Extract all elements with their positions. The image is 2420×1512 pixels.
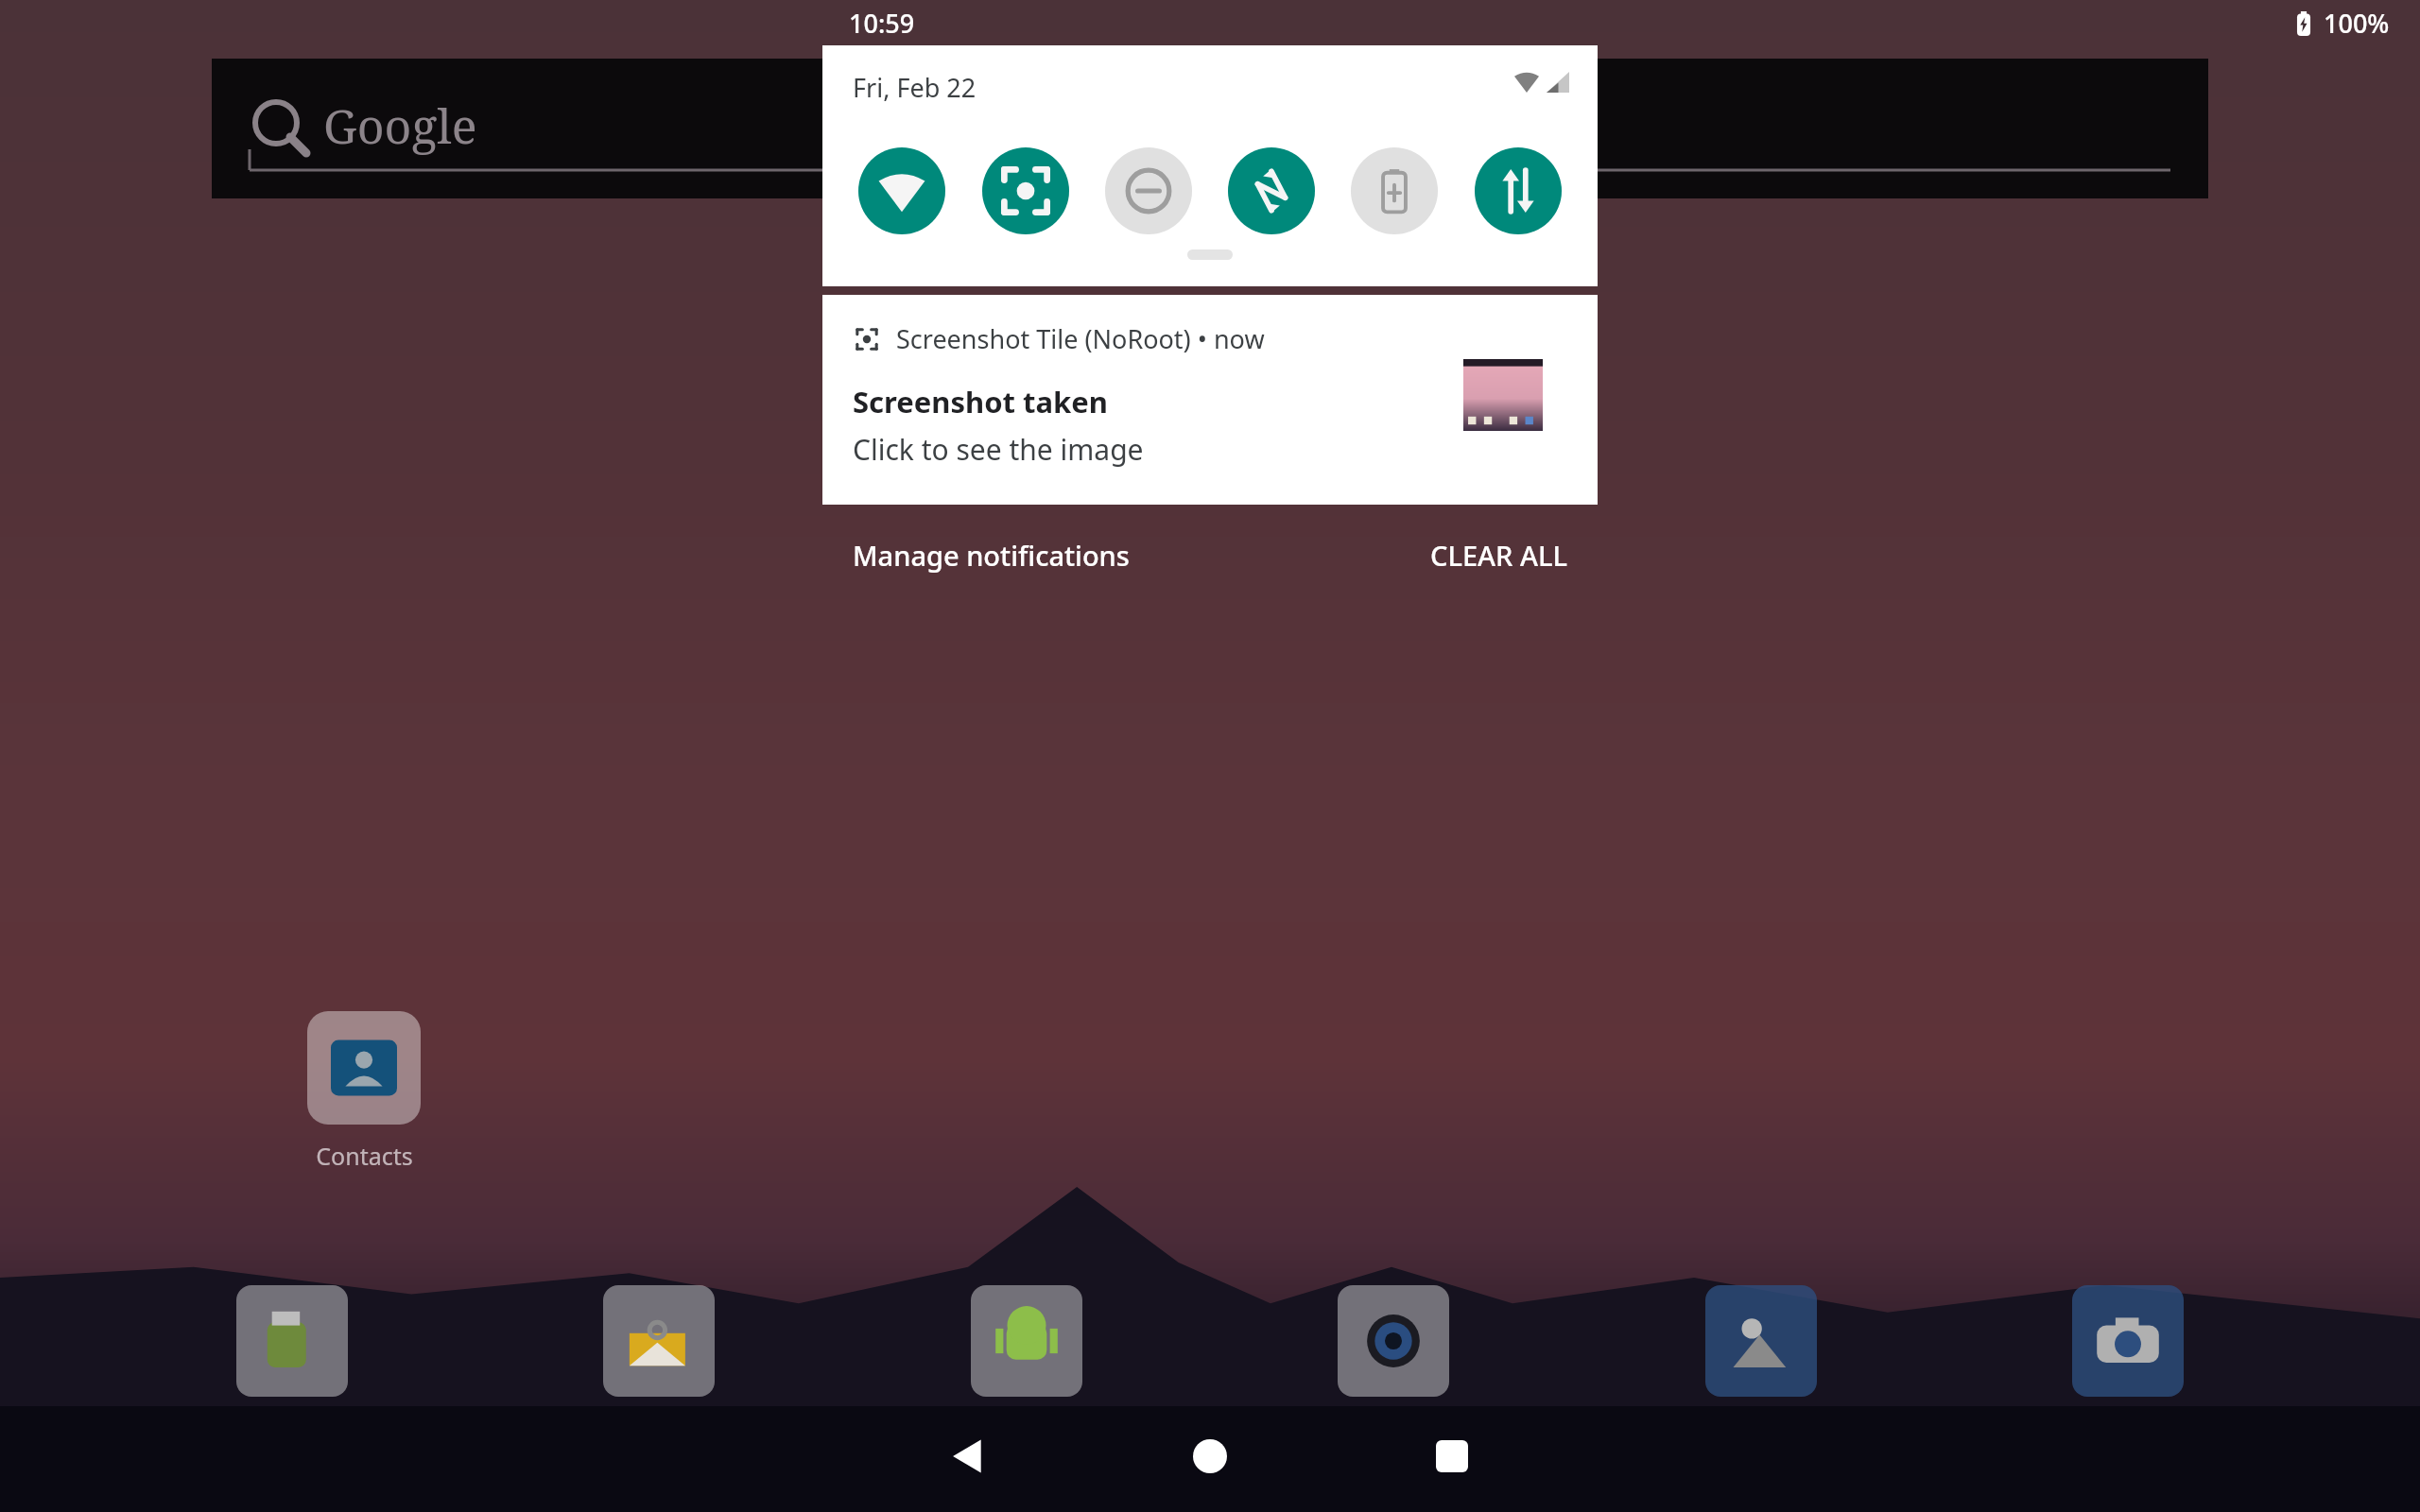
- button[interactable]: Wi-Fi: [858, 147, 945, 234]
- staticText: 10:59: [849, 6, 915, 41]
- button[interactable]: Back: [912, 1400, 1024, 1512]
- staticText: 100%: [2324, 6, 2390, 41]
- button[interactable]: Google: [212, 59, 2208, 198]
- button[interactable]: [307, 1011, 421, 1125]
- staticText: Fri, Feb 22: [853, 70, 977, 105]
- staticText: Contacts: [316, 1140, 413, 1172]
- button[interactable]: Screenshot: [982, 147, 1069, 234]
- button[interactable]: Manage notifications: [822, 529, 1137, 581]
- staticText: Click to see the image: [853, 430, 1144, 469]
- button[interactable]: Data: [1475, 147, 1562, 234]
- button[interactable]: Messaging: [236, 1285, 348, 1397]
- button[interactable]: Do not disturb: [1105, 147, 1192, 234]
- button[interactable]: Camera: [2072, 1285, 2184, 1397]
- button[interactable]: CLEAR ALL: [1423, 529, 1598, 581]
- button[interactable]: Recents: [1396, 1400, 1508, 1512]
- button[interactable]: Home: [1154, 1400, 1266, 1512]
- button[interactable]: Apps: [971, 1285, 1082, 1397]
- button[interactable]: Auto rotate: [1228, 147, 1315, 234]
- button[interactable]: Email: [603, 1285, 715, 1397]
- button[interactable]: Battery saver: [1351, 147, 1438, 234]
- staticText: CLEAR ALL: [1430, 537, 1567, 574]
- button[interactable]: Screenshot Tile (NoRoot) • now: [822, 295, 1598, 505]
- staticText: Screenshot Tile (NoRoot) • now: [896, 321, 1265, 356]
- button[interactable]: Photos: [1705, 1285, 1817, 1397]
- staticText: Manage notifications: [853, 537, 1130, 574]
- staticText: Screenshot taken: [853, 382, 1108, 421]
- button[interactable]: Camera lens: [1338, 1285, 1449, 1397]
- staticText: Google: [323, 94, 477, 158]
